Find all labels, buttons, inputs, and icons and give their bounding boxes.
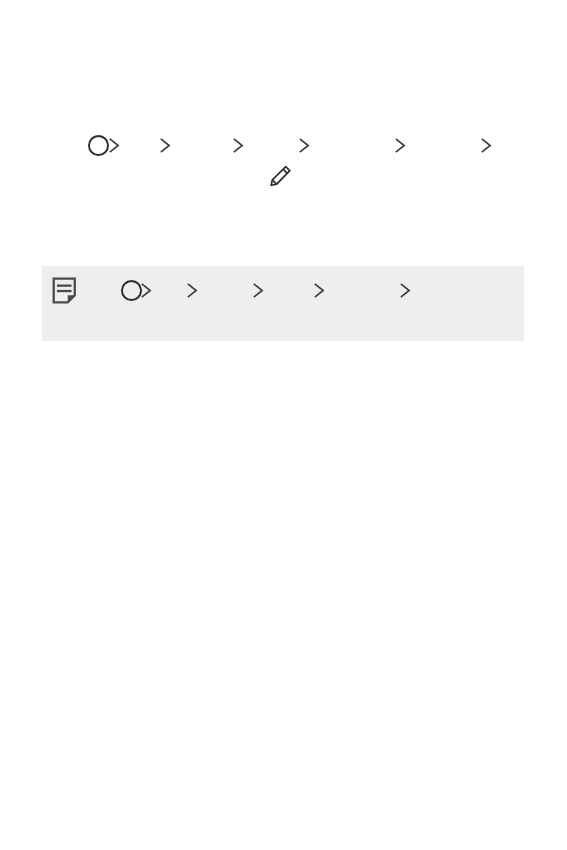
button[interactable]: Document: [42, 266, 524, 341]
button[interactable]: Home: [121, 280, 142, 301]
button[interactable]: Document: [51, 277, 78, 304]
button[interactable]: Edit: [268, 165, 291, 188]
button[interactable]: Home: [88, 135, 109, 156]
